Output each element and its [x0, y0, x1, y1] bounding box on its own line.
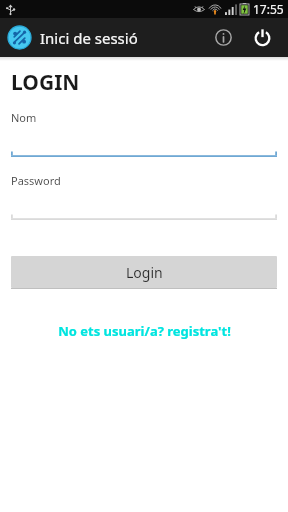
staticText: Password: [11, 173, 61, 188]
button[interactable]: Informació: [204, 18, 242, 57]
button[interactable]: No ets usuari/a? registra't!: [11, 320, 277, 342]
button[interactable]: Tancar sessió: [242, 18, 282, 57]
staticText: Nom: [11, 110, 37, 125]
staticText: No ets usuari/a? registra't!: [58, 322, 231, 340]
button[interactable]: Camp de contrasenya: [11, 192, 277, 220]
staticText: 17:55: [253, 1, 284, 17]
staticText: LOGIN: [11, 68, 80, 97]
staticText: Inici de sessió: [40, 28, 138, 48]
button[interactable]: Camp de nom: [11, 129, 277, 157]
button[interactable]: Login: [11, 256, 277, 288]
staticText: Login: [126, 263, 163, 282]
